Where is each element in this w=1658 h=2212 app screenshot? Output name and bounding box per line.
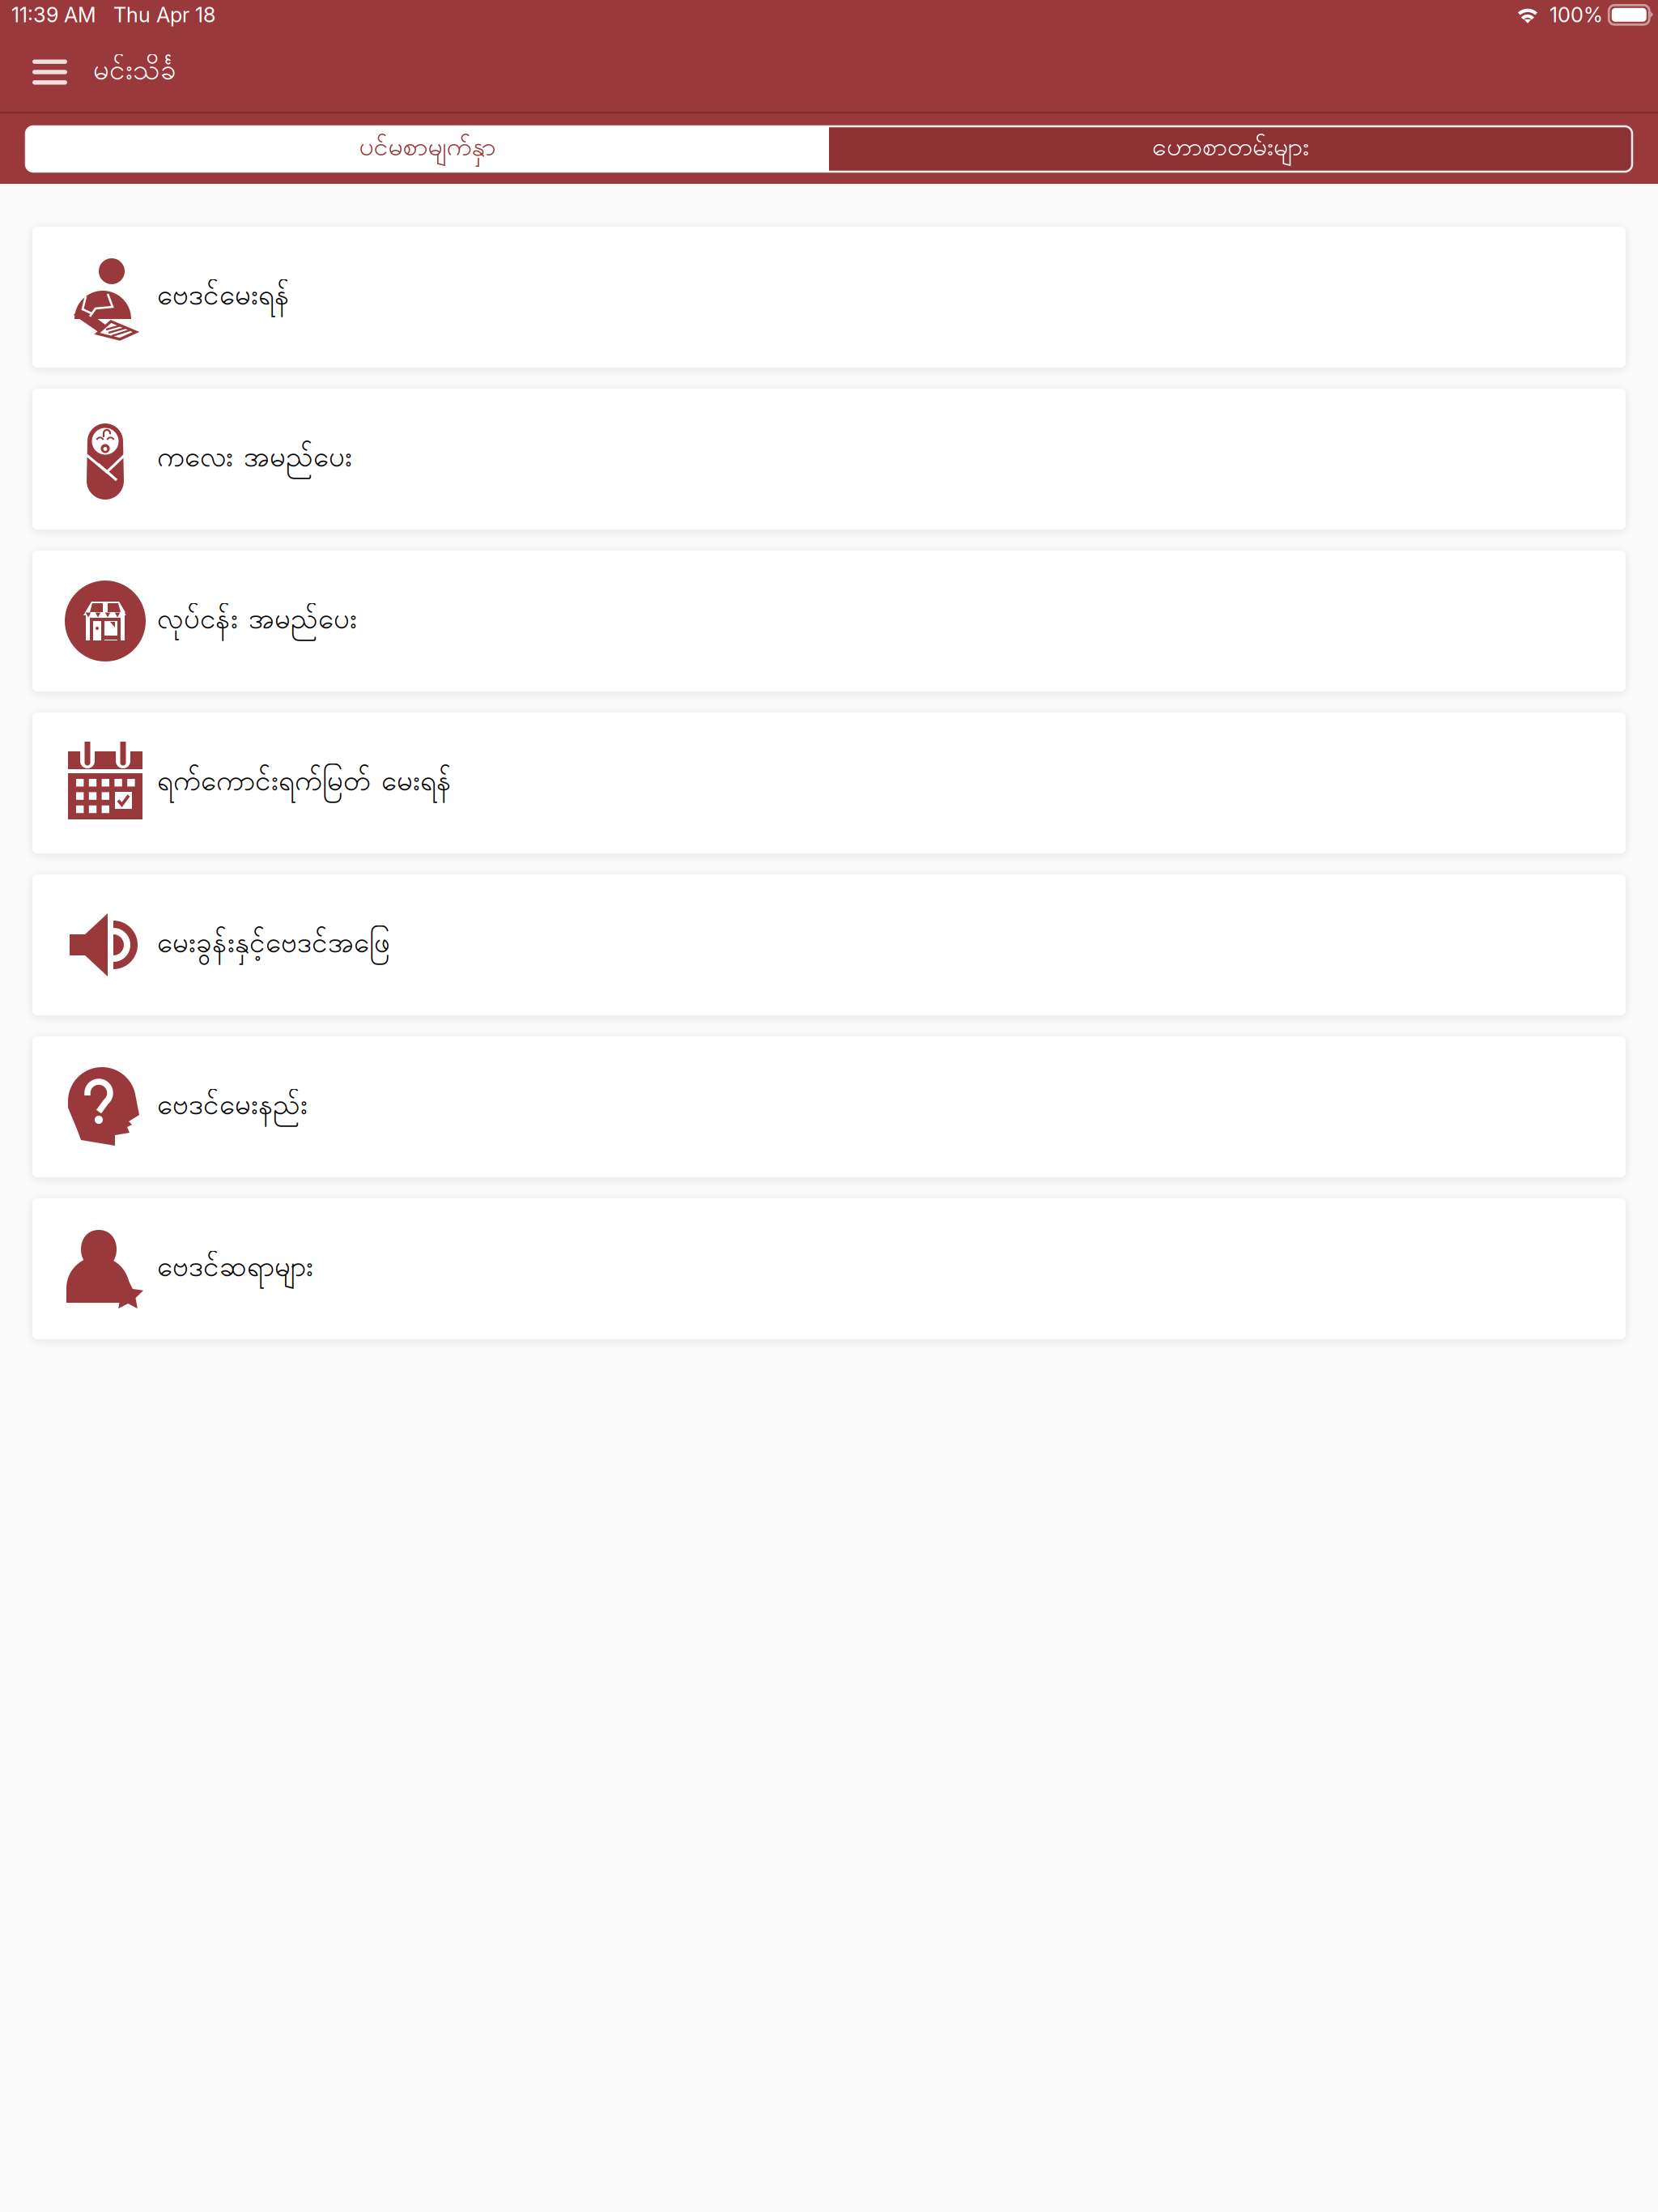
- staticText: လုပ်ငန်း အမည်ပေး: [157, 600, 357, 642]
- staticText: ဗေဒင်မေးနည်း: [157, 1086, 308, 1127]
- staticText: မင်းသိင်္ခ: [93, 51, 176, 93]
- staticText: 100%: [1550, 2, 1603, 27]
- button[interactable]: Menu: [0, 38, 93, 113]
- staticText: မေးခွန်းနှင့်ဗေဒင်အဖြေ: [157, 924, 390, 966]
- staticText: ဗေဒင်ဆရာများ: [157, 1248, 313, 1289]
- button[interactable]: ရက်ကောင်းရက်မြတ် မေးရန်: [32, 713, 1626, 853]
- button[interactable]: မေးခွန်းနှင့်ဗေဒင်အဖြေ: [32, 874, 1626, 1015]
- button[interactable]: ဗေဒင်မေးနည်း: [32, 1036, 1626, 1177]
- staticText: ရက်ကောင်းရက်မြတ် မေးရန်: [157, 762, 452, 804]
- button[interactable]: လုပ်ငန်း အမည်ပေး: [32, 551, 1626, 691]
- staticText: 11:39 AM: [11, 2, 96, 27]
- button[interactable]: ပင်မစာမျက်နှာ: [26, 126, 829, 172]
- button[interactable]: ဟောစာတမ်းများ: [829, 126, 1632, 172]
- staticText: ပင်မစာမျက်နှာ: [359, 130, 496, 168]
- staticText: ဟောစာတမ်းများ: [1152, 130, 1309, 168]
- staticText: ဗေဒင်မေးရန်: [157, 276, 290, 318]
- button[interactable]: ဗေဒင်မေးရန်: [32, 227, 1626, 368]
- staticText: Thu Apr 18: [113, 2, 215, 27]
- button[interactable]: ဗေဒင်ဆရာများ: [32, 1198, 1626, 1339]
- button[interactable]: ကလေး အမည်ပေး: [32, 389, 1626, 530]
- staticText: ကလေး အမည်ပေး: [157, 438, 352, 480]
